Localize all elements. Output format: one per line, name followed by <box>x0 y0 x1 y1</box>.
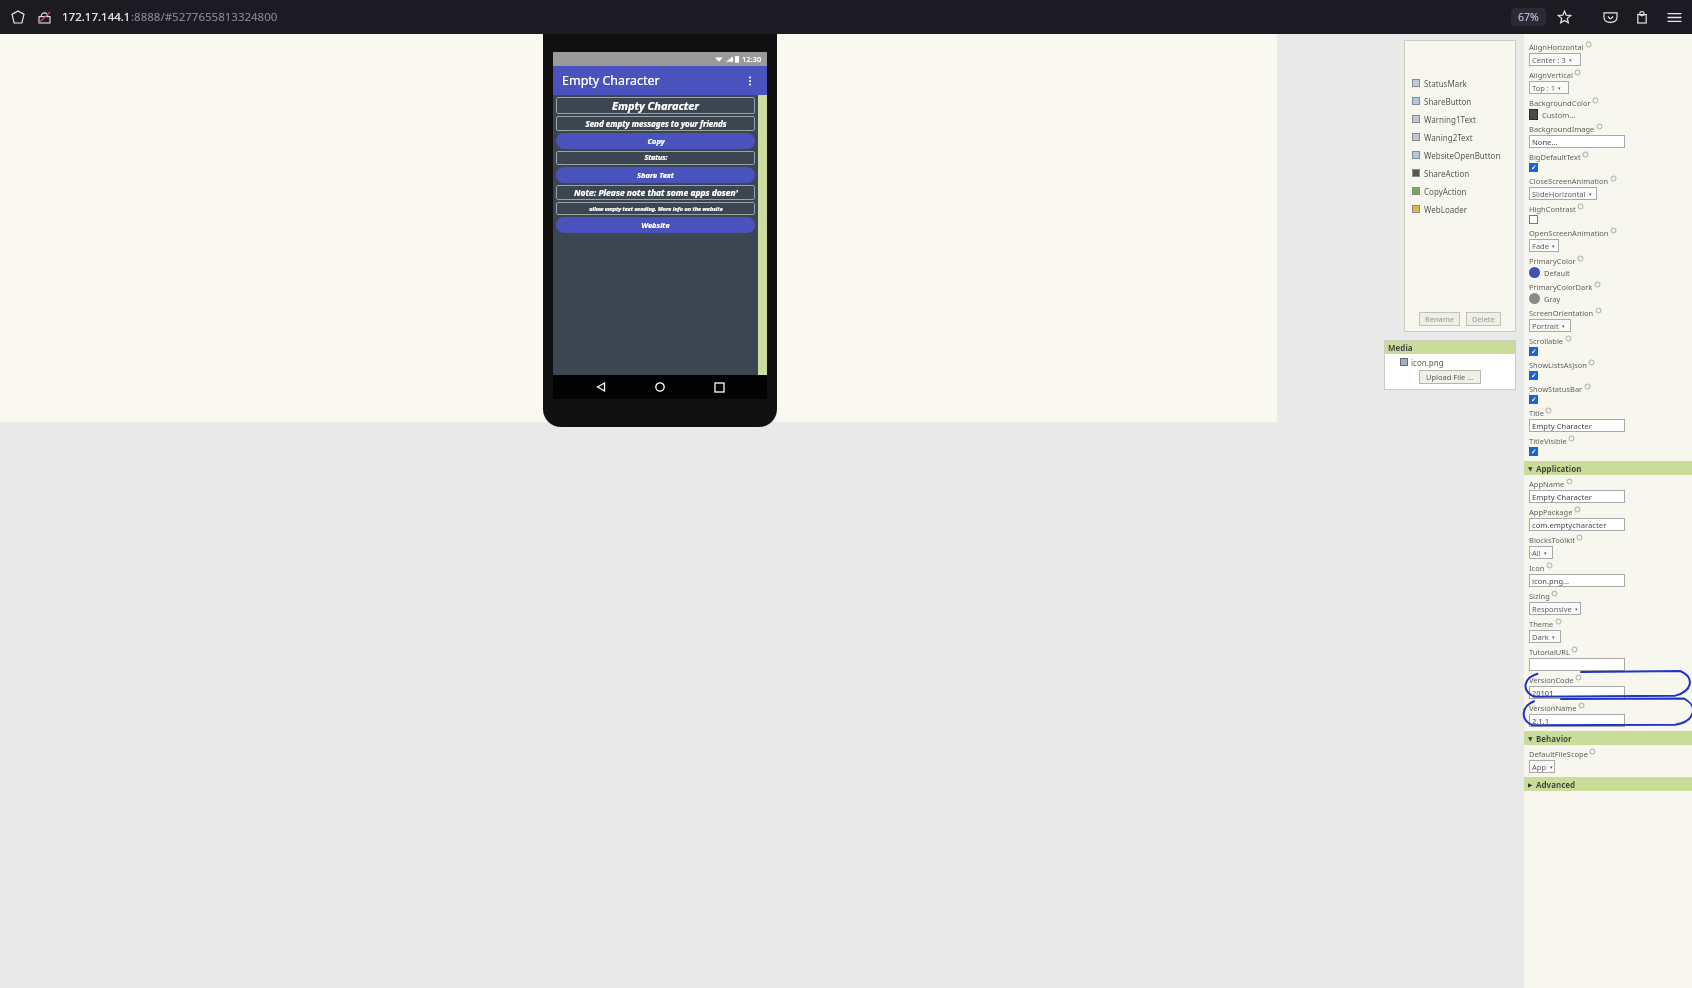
button[interactable]: Responsive <box>1529 602 1581 615</box>
staticText: ✓ <box>1531 372 1537 380</box>
staticText: 2.1.1 <box>1532 716 1549 726</box>
button[interactable]: SlideHorizontal <box>1529 187 1597 200</box>
staticText: Upload File ... <box>1426 372 1474 382</box>
button[interactable]: Note: Please note that some apps dosen' <box>556 185 755 200</box>
staticText: ▾ <box>1558 85 1561 91</box>
staticText: Scrollable <box>1529 336 1564 346</box>
button[interactable]: Checkbox <box>1529 371 1538 380</box>
button[interactable]: App <box>1529 760 1555 773</box>
button[interactable]: allow empty text sending. More info on t… <box>556 202 755 215</box>
button[interactable]: All <box>1529 546 1553 559</box>
button[interactable]: StatusMark <box>1404 74 1516 92</box>
button[interactable]: Open application menu <box>1664 7 1684 27</box>
button[interactable]: Empty Character <box>556 97 755 114</box>
staticText: Gray <box>1544 294 1561 304</box>
staticText: allow empty text sending. More info on t… <box>589 205 723 212</box>
staticText: CloseScreenAnimation <box>1529 176 1609 186</box>
button[interactable]: icon.png <box>1384 354 1516 370</box>
button[interactable]: Checkbox <box>1529 395 1538 404</box>
button[interactable]: WebLoader <box>1404 200 1516 218</box>
button[interactable]: Connection not secure <box>34 7 54 27</box>
button[interactable]: Checkbox <box>1529 447 1538 456</box>
button[interactable]: Portrait <box>1529 319 1571 332</box>
button[interactable]: ▶ <box>1524 777 1692 791</box>
staticText: AlignVertical <box>1529 70 1573 80</box>
staticText: StatusMark <box>1424 78 1467 89</box>
button[interactable]: Gray <box>1529 293 1561 304</box>
button[interactable]: Delete <box>1466 312 1501 326</box>
button[interactable]: ShareButton <box>1404 92 1516 110</box>
staticText: VersionCode <box>1529 675 1574 685</box>
staticText: Sizing <box>1529 591 1550 601</box>
button[interactable]: Default <box>1529 267 1570 278</box>
button[interactable]: ▼ <box>1524 731 1692 745</box>
staticText: PrimaryColor <box>1529 256 1576 266</box>
button[interactable]: 20101 <box>1529 686 1625 699</box>
button[interactable]: Checkbox <box>1529 163 1538 172</box>
button[interactable]: Save to Pocket <box>1600 7 1620 27</box>
button[interactable]: Custom... <box>1529 109 1576 120</box>
button[interactable]: ShareAction <box>1404 164 1516 182</box>
button[interactable]: Extensions <box>1632 7 1652 27</box>
staticText: ShowListsAsJson <box>1529 360 1587 370</box>
staticText: ▼ <box>1528 735 1533 742</box>
button[interactable]: Top : 1 <box>1529 81 1569 94</box>
staticText: ✓ <box>1531 164 1537 172</box>
staticText: Empty Character <box>1532 421 1592 431</box>
button[interactable]: Tracking protection <box>8 7 28 27</box>
button[interactable]: Dark <box>1529 630 1561 643</box>
button[interactable]: Upload File ... <box>1419 370 1481 384</box>
button[interactable]: Empty Character <box>1529 490 1625 503</box>
staticText: 12:30 <box>742 54 762 64</box>
button[interactable]: 67% <box>1511 8 1546 26</box>
staticText: :8888/#5277655813324800 <box>131 9 278 25</box>
button[interactable]: Home <box>649 376 671 398</box>
button[interactable]: Copy <box>556 133 755 149</box>
staticText: ✓ <box>1531 348 1537 356</box>
button[interactable]: CopyAction <box>1404 182 1516 200</box>
staticText: Responsive <box>1532 604 1572 614</box>
button[interactable]: Empty Character <box>1529 419 1625 432</box>
button[interactable]: Send empty messages to your friends <box>556 116 755 131</box>
staticText: ▾ <box>1569 57 1572 63</box>
staticText: Default <box>1544 268 1570 278</box>
button[interactable]: Bookmark <box>1554 7 1574 27</box>
staticText: ▼ <box>1528 465 1533 472</box>
staticText: Portrait <box>1532 321 1559 331</box>
button[interactable]: Back <box>590 376 612 398</box>
button[interactable]: None... <box>1529 135 1625 148</box>
button[interactable]: Rename <box>1419 312 1460 326</box>
button[interactable]: Checkbox <box>1529 347 1538 356</box>
button[interactable]: Checkbox <box>1529 215 1538 224</box>
staticText: Copy <box>647 136 665 146</box>
button[interactable]: WebsiteOpenButton <box>1404 146 1516 164</box>
staticText: Share Text <box>637 170 674 180</box>
staticText: Website <box>641 220 670 230</box>
button[interactable]: Share Text <box>556 167 755 183</box>
staticText: AppName <box>1529 479 1565 489</box>
button[interactable]: icon.png... <box>1529 574 1625 587</box>
button[interactable]: Website <box>556 217 755 233</box>
staticText: Center : 3 <box>1532 55 1566 65</box>
staticText: AppPackage <box>1529 507 1573 517</box>
button[interactable]: ▼ <box>1524 461 1692 475</box>
staticText: Application <box>1536 463 1582 474</box>
staticText: Rename <box>1425 314 1454 324</box>
staticText: ▾ <box>1589 191 1592 197</box>
button[interactable]: Fade <box>1529 239 1559 252</box>
button[interactable]: com.emptycharacter <box>1529 518 1625 531</box>
staticText: Top : 1 <box>1532 83 1555 93</box>
button[interactable]: 2.1.1 <box>1529 714 1625 727</box>
button[interactable] <box>1529 658 1625 671</box>
button[interactable]: Status: <box>556 151 755 165</box>
staticText: Custom... <box>1542 110 1576 120</box>
staticText: ▾ <box>1575 606 1578 612</box>
staticText: ▾ <box>1550 764 1552 770</box>
button[interactable]: Warning1Text <box>1404 110 1516 128</box>
button[interactable]: Waning2Text <box>1404 128 1516 146</box>
staticText: BackgroundColor <box>1529 98 1591 108</box>
button[interactable]: Center : 3 <box>1529 53 1581 66</box>
button[interactable]: More options <box>742 73 758 89</box>
staticText: All <box>1532 548 1541 558</box>
button[interactable]: Recent apps <box>708 376 730 398</box>
